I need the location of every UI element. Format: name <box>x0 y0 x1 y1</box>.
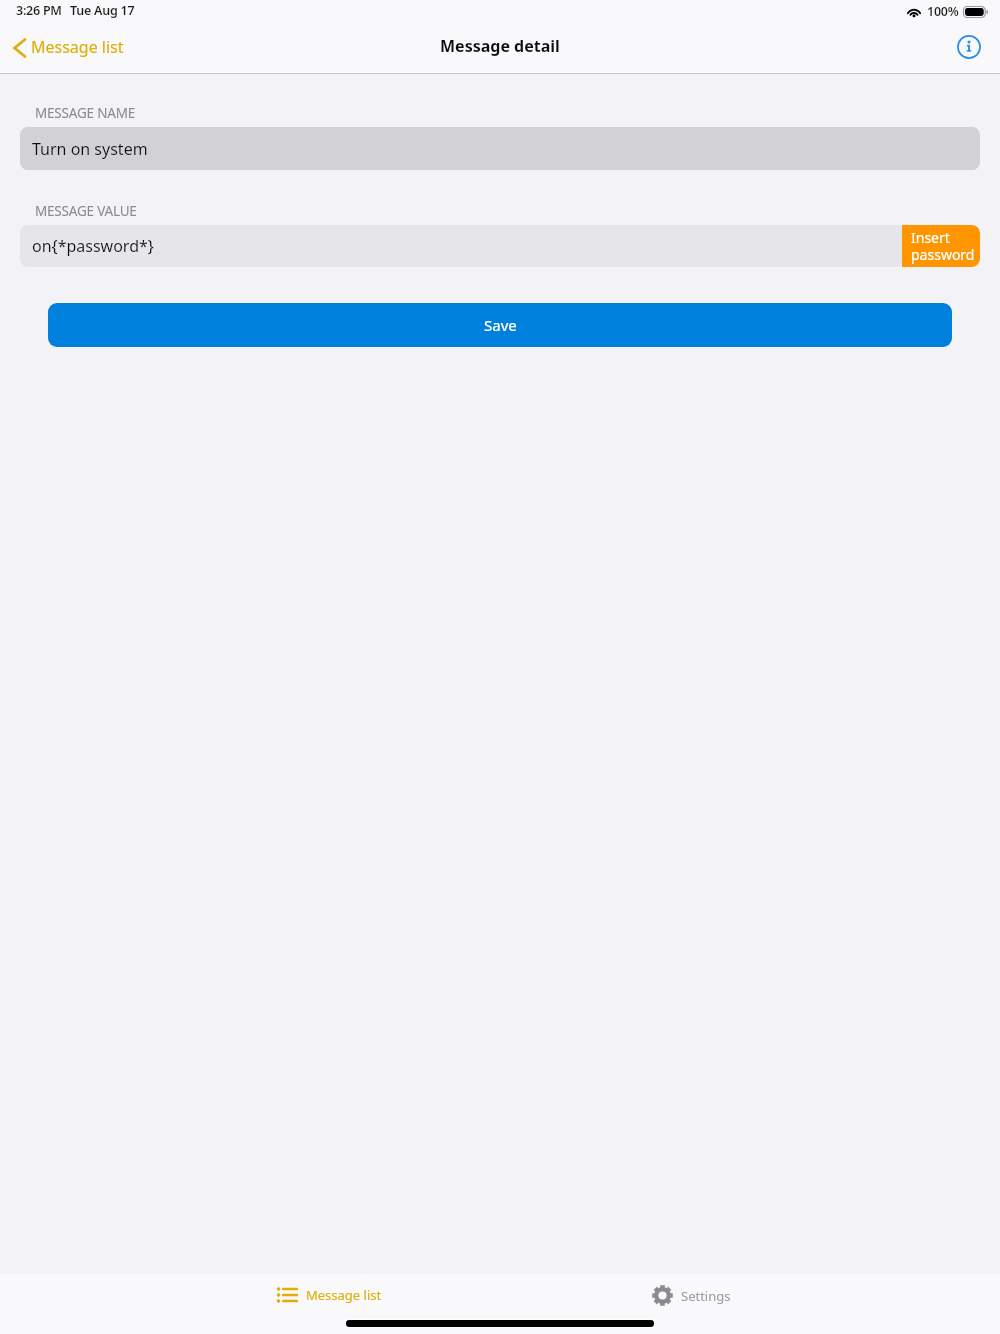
button[interactable]: on{*password*} <box>20 225 902 267</box>
staticText: MESSAGE VALUE <box>35 202 137 220</box>
staticText: MESSAGE NAME <box>35 104 136 122</box>
staticText: on{*password*} <box>32 235 154 257</box>
staticText: Insert password <box>911 228 975 264</box>
button[interactable]: Save <box>48 303 952 347</box>
staticText: Turn on system <box>32 138 148 160</box>
staticText: Message list <box>31 36 124 58</box>
button[interactable]: Settings <box>638 1279 745 1312</box>
button[interactable]: Turn on system <box>20 127 980 170</box>
staticText: Message detail <box>440 35 560 57</box>
staticText: Message list <box>306 1286 382 1304</box>
button[interactable]: Info <box>951 29 987 65</box>
button[interactable]: Message list <box>0 30 136 64</box>
staticText: 100% <box>927 3 959 20</box>
staticText: Tue Aug 17 <box>70 2 135 19</box>
staticText: 3:26 PM <box>16 2 62 19</box>
staticText: Settings <box>681 1287 731 1305</box>
staticText: Save <box>484 315 517 335</box>
button[interactable]: Message list <box>262 1280 396 1310</box>
button[interactable]: Insert password <box>902 225 980 267</box>
